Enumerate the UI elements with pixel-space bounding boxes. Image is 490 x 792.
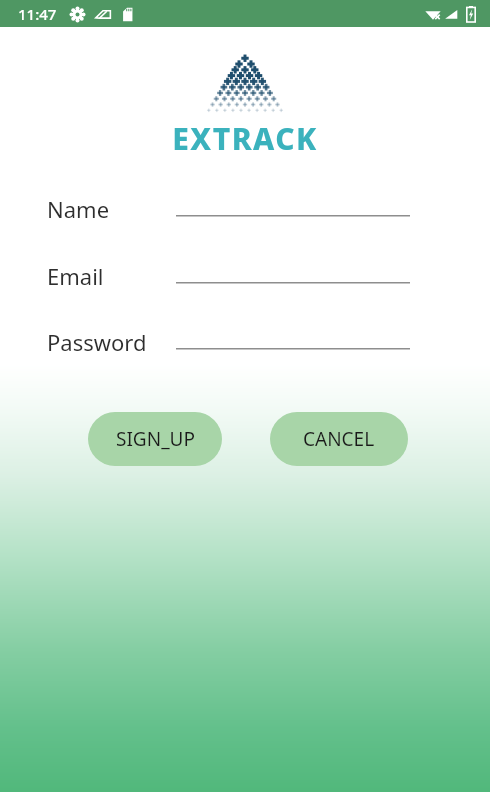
staticText: Password	[47, 327, 147, 357]
staticText: Email	[47, 261, 104, 291]
staticText: EXTRACK	[172, 118, 318, 159]
staticText: 11:47	[18, 4, 57, 24]
staticText: SIGN_UP	[116, 426, 195, 452]
button[interactable]: CANCEL	[270, 412, 408, 466]
button[interactable]: Password	[0, 325, 490, 359]
staticText: CANCEL	[303, 426, 375, 452]
staticText: Name	[47, 194, 110, 224]
button[interactable]: SIGN_UP	[88, 412, 222, 466]
button[interactable]: Email	[0, 259, 490, 293]
button[interactable]: Name	[0, 192, 490, 226]
other: Extrack logo	[208, 56, 282, 112]
